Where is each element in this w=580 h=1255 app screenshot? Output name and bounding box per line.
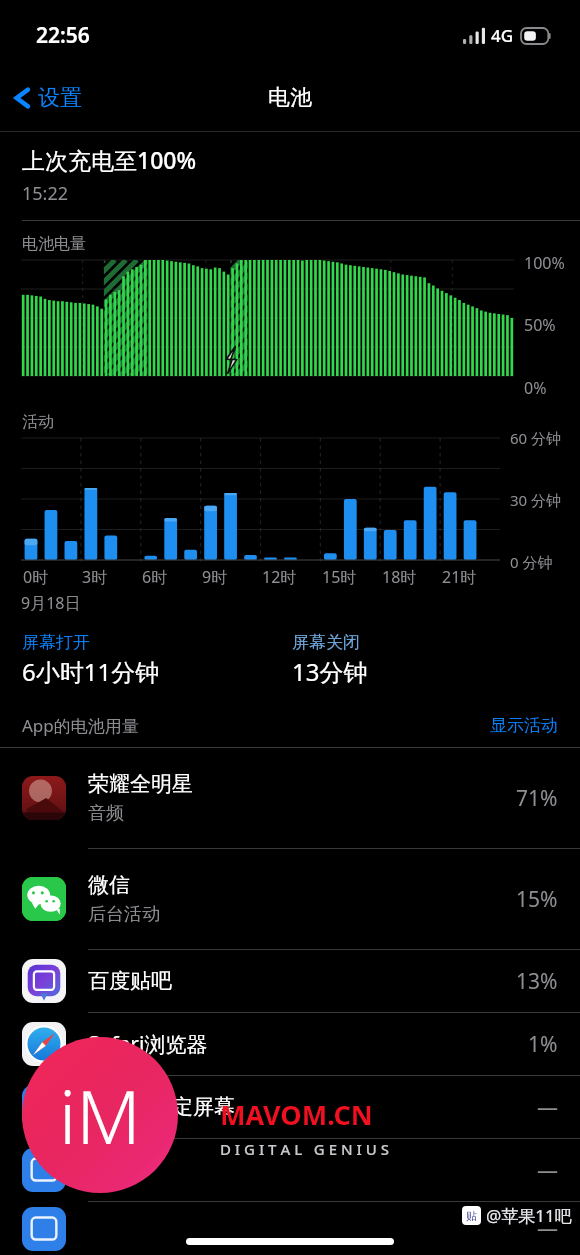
staticText: 12时 [262, 566, 297, 588]
button[interactable]: — [0, 1202, 580, 1255]
staticText: App的电池用量 [22, 714, 139, 737]
staticText: 1% [528, 1030, 558, 1059]
staticText: 22:56 [36, 21, 90, 50]
staticText: 0 分钟 [510, 552, 553, 572]
staticText: 3时 [82, 566, 108, 588]
staticText: 0时 [23, 566, 49, 588]
button[interactable]: 设置 [0, 78, 94, 118]
staticText: Safari浏览器 [88, 1030, 208, 1059]
staticText: 4G [491, 24, 514, 47]
button[interactable]: Safari浏览器 [0, 1013, 580, 1076]
staticText: 上次充电至100% [22, 144, 197, 175]
staticText: 15% [516, 885, 558, 914]
staticText: 屏幕打开 [22, 632, 90, 653]
staticText: 屏幕关闭 [292, 632, 360, 653]
staticText: 50% [524, 314, 556, 336]
staticText: 9月18日 [21, 592, 81, 614]
staticText: 60 分钟 [510, 428, 562, 448]
staticText: — [537, 1093, 558, 1122]
staticText: 电池 [268, 84, 312, 112]
staticText: 30 分钟 [510, 490, 562, 510]
staticText: iM [59, 1065, 141, 1166]
button[interactable]: 照片与锁定屏幕 [0, 1076, 580, 1139]
staticText: 18时 [382, 566, 417, 588]
button[interactable]: 荣耀全明星 [0, 748, 580, 849]
button[interactable]: — [0, 1139, 580, 1202]
staticText: @苹果11吧 [486, 1204, 572, 1227]
staticText: 贴 [466, 1209, 477, 1223]
staticText: 后台活动 [88, 903, 160, 926]
staticText: MAVOM.CN [220, 1096, 373, 1133]
staticText: 13% [516, 967, 558, 996]
button[interactable]: 显示活动 [490, 715, 558, 736]
staticText: 6小时11分钟 [22, 655, 160, 688]
staticText: 活动 [22, 412, 54, 432]
staticText: 15时 [322, 566, 357, 588]
button[interactable]: 微信 [0, 849, 580, 950]
staticText: 电池电量 [22, 234, 86, 254]
staticText: 100% [524, 252, 565, 274]
staticText: 21时 [442, 566, 477, 588]
staticText: 13分钟 [292, 655, 368, 688]
staticText: 71% [516, 784, 558, 813]
staticText: 显示活动 [490, 715, 558, 736]
staticText: 9时 [202, 566, 228, 588]
staticText: 荣耀全明星 [88, 771, 193, 797]
button[interactable]: 百度贴吧 [0, 950, 580, 1013]
staticText: 音频 [88, 802, 124, 825]
staticText: 15:22 [22, 181, 69, 206]
staticText: 6时 [142, 566, 168, 588]
staticText: 设置 [38, 84, 82, 112]
staticText: 0% [524, 377, 547, 399]
staticText: — [537, 1214, 558, 1243]
staticText: 百度贴吧 [88, 968, 172, 994]
staticText: 微信 [88, 872, 130, 898]
staticText: — [537, 1156, 558, 1185]
staticText: D I G I T A L G E N I U S [220, 1139, 389, 1159]
staticText: 照片与锁定屏幕 [88, 1094, 235, 1120]
